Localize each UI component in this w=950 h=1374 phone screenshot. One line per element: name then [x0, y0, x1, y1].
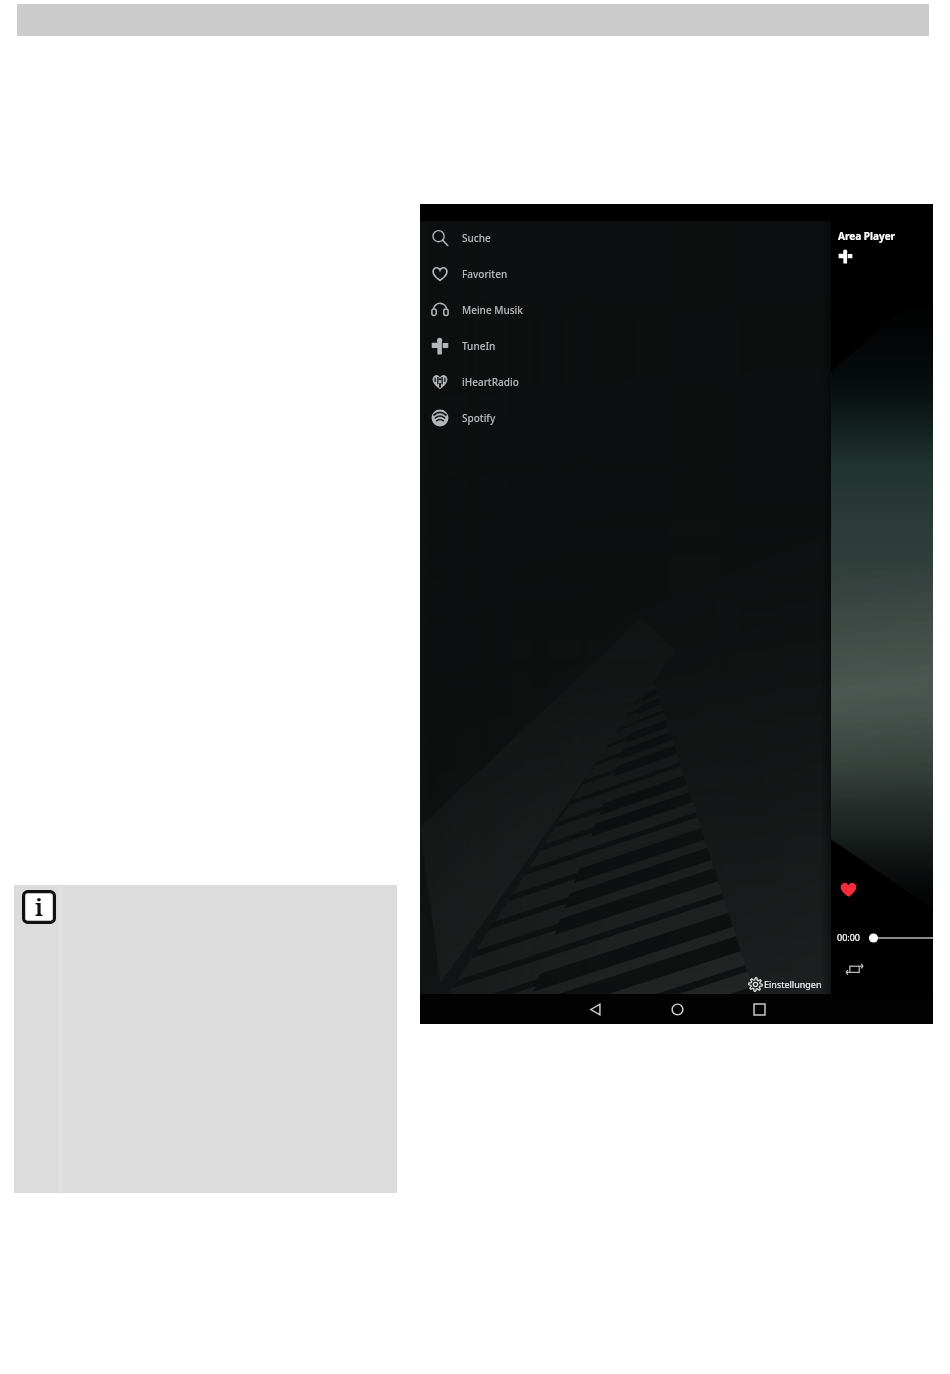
button[interactable]: Favorite	[839, 881, 858, 898]
staticText: Einstellungen	[764, 978, 822, 990]
button[interactable]: Favoriten	[420, 256, 831, 292]
staticText: Spotify	[462, 411, 496, 425]
staticText: Favoriten	[462, 267, 508, 281]
staticText: iHeartRadio	[462, 375, 519, 389]
button[interactable]: Einstellungen	[748, 974, 822, 994]
button[interactable]: TuneIn	[420, 328, 831, 364]
staticText: Meine Musik	[462, 303, 523, 317]
button[interactable]: Back	[578, 994, 612, 1024]
staticText: i	[35, 891, 44, 922]
button[interactable]: Suche	[420, 220, 831, 256]
button[interactable]: Spotify	[420, 400, 831, 436]
staticText: TuneIn	[462, 339, 496, 353]
button[interactable]: iHeartRadio	[420, 364, 831, 400]
button[interactable]: Repeat	[847, 962, 863, 976]
button[interactable]: Meine Musik	[420, 292, 831, 328]
button[interactable]: Recents	[742, 994, 776, 1024]
button[interactable]: Home	[660, 994, 694, 1024]
staticText: Area Player	[838, 229, 896, 243]
staticText: 00:00	[837, 931, 861, 943]
staticText: Suche	[462, 231, 491, 245]
